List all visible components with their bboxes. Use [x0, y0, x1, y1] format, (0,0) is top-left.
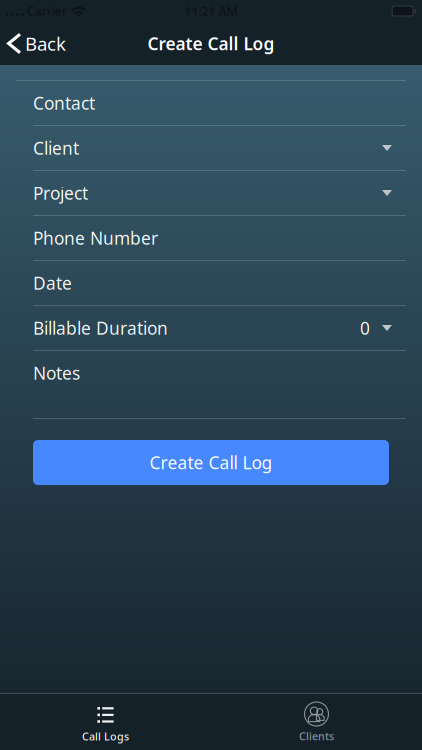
staticText: Billable Duration [33, 316, 168, 339]
button[interactable]: Phone Number [0, 216, 422, 260]
staticText: 0 [360, 316, 370, 339]
staticText: Phone Number [33, 226, 158, 249]
staticText: Carrier [27, 3, 67, 19]
staticText: Contact [33, 91, 95, 114]
button[interactable]: Contact [0, 81, 422, 125]
staticText: Call Logs [82, 729, 129, 744]
button[interactable]: Back [0, 22, 76, 65]
staticText: Create Call Log [147, 32, 274, 55]
staticText: Date [33, 271, 72, 294]
staticText: Project [33, 181, 88, 204]
button[interactable]: Client [0, 126, 422, 170]
staticText: Notes [33, 361, 80, 384]
staticText: Client [33, 136, 79, 159]
staticText: Clients [299, 729, 334, 743]
button[interactable]: Call Logs [0, 694, 211, 750]
button[interactable]: Date [0, 261, 422, 305]
button[interactable]: Billable Duration [0, 306, 422, 350]
staticText: Back [25, 31, 66, 56]
staticText: 11:21 AM [184, 3, 237, 19]
button[interactable]: Project [0, 171, 422, 215]
staticText: Create Call Log [149, 451, 272, 474]
button[interactable]: Clients [211, 694, 422, 750]
button[interactable]: Notes [0, 351, 422, 418]
button[interactable]: Create Call Log [33, 440, 389, 485]
